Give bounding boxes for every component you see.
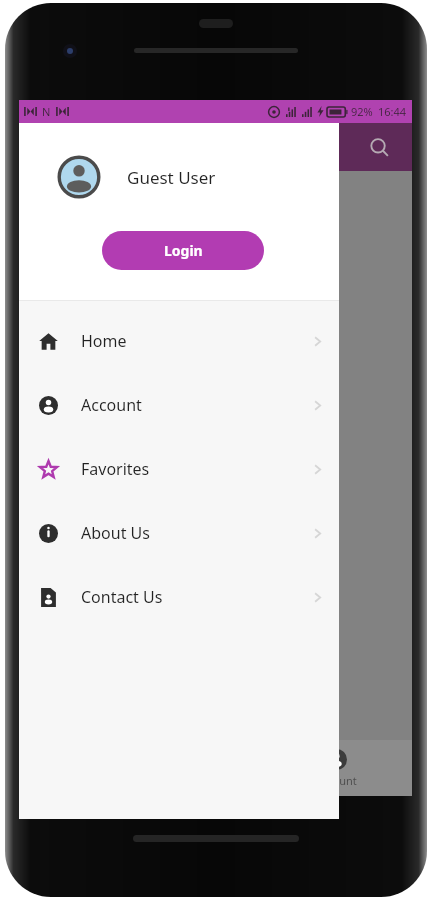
staticText: Account [81,394,309,416]
staticText: Account [315,773,357,788]
button[interactable]: About Us [19,501,339,565]
staticText: Contact Us [81,586,309,608]
staticText: Login [164,241,203,260]
button[interactable]: Favorites [19,437,339,501]
staticText: N [42,104,51,119]
staticText: Guest User [127,166,216,189]
button[interactable]: Login [102,231,264,270]
button[interactable]: Search [359,127,399,167]
staticText: 16:44 [378,104,407,119]
staticText: Welcome to [41,571,125,591]
button[interactable]: Account [19,373,339,437]
button[interactable]: Home [19,309,339,373]
staticText: About Us [81,522,309,544]
staticText: Home [81,330,309,352]
button[interactable]: Contact Us [19,565,339,629]
staticText: Favorites [81,458,309,480]
staticText: 92% [351,104,373,119]
button[interactable]: Account [291,740,381,796]
